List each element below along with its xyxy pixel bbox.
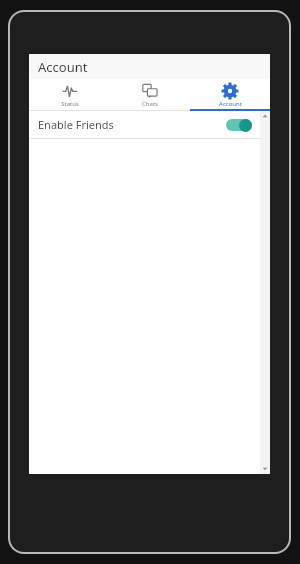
button[interactable]: Scroll down <box>260 464 270 474</box>
staticText: Enable Friends <box>38 117 114 132</box>
staticText: Chats <box>142 100 158 108</box>
button[interactable]: Account <box>190 79 270 111</box>
button[interactable]: Enable Friends toggle <box>226 118 252 132</box>
staticText: Status <box>61 100 79 108</box>
button[interactable]: Enable Friends <box>29 111 260 138</box>
staticText: Account <box>219 100 242 108</box>
button[interactable]: Chats <box>110 79 190 111</box>
button[interactable]: Scroll up <box>260 111 270 121</box>
button[interactable]: Status <box>29 79 110 111</box>
staticText: Account <box>38 58 88 76</box>
